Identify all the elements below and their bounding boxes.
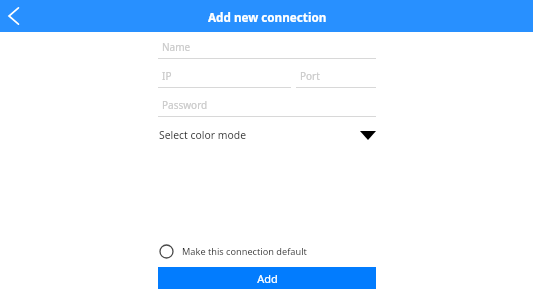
staticText: Add new connection bbox=[208, 9, 327, 25]
button[interactable]: Select color mode bbox=[158, 126, 376, 144]
staticText: Add bbox=[257, 271, 278, 286]
button[interactable]: Add bbox=[158, 267, 376, 289]
staticText: Make this connection default bbox=[182, 245, 307, 258]
button[interactable]: Name bbox=[158, 37, 376, 59]
button[interactable]: Port bbox=[296, 66, 376, 88]
staticText: Select color mode bbox=[159, 128, 247, 142]
button[interactable]: Password bbox=[158, 95, 376, 117]
staticText: Name bbox=[162, 40, 191, 54]
staticText: Port bbox=[300, 69, 320, 83]
staticText: IP bbox=[162, 69, 172, 83]
button[interactable]: Make this connection default bbox=[158, 243, 307, 260]
staticText: Password bbox=[162, 98, 208, 112]
button[interactable]: IP bbox=[158, 66, 291, 88]
button[interactable]: Back bbox=[0, 0, 32, 32]
